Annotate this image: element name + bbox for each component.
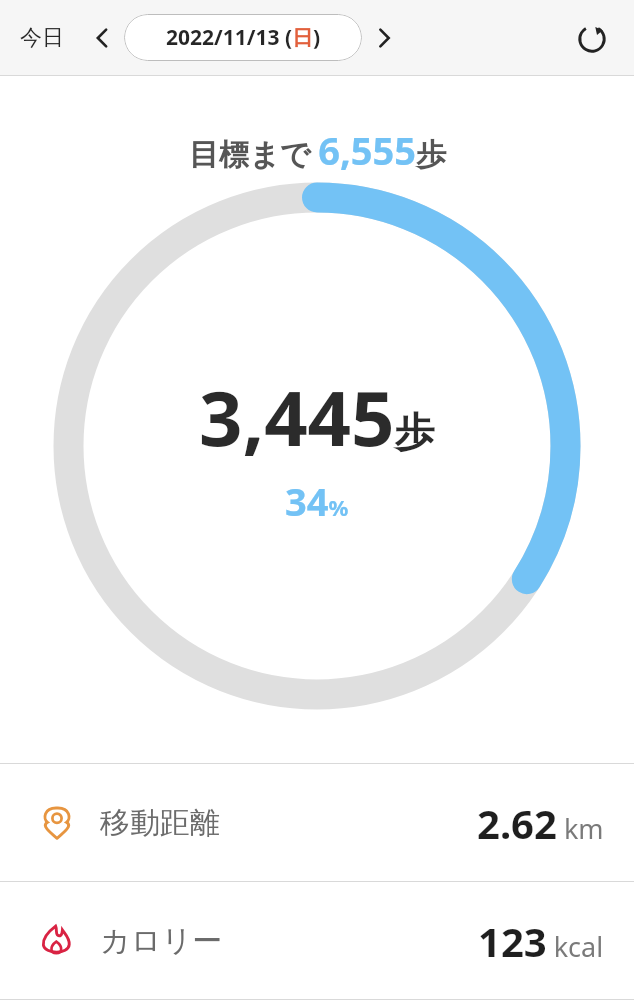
staticText: 2.62 km (477, 796, 604, 850)
staticText: 目標まで 6,555歩 (189, 124, 446, 176)
staticText: カロリー (100, 922, 223, 960)
staticText: 3,445歩 (199, 365, 435, 469)
button[interactable]: Calories (0, 882, 634, 999)
button[interactable]: Refresh (568, 14, 616, 62)
staticText: 2022/11/13 (日) (166, 23, 321, 52)
staticText: 123 kcal (478, 914, 604, 968)
button[interactable]: Next day (362, 16, 406, 60)
button[interactable]: 今日 (14, 16, 70, 60)
other: Distance (40, 806, 74, 840)
staticText: 移動距離 (100, 804, 220, 842)
button[interactable]: 2022/11/13 (日) (124, 14, 362, 61)
button[interactable]: Distance (0, 764, 634, 881)
staticText: 34% (285, 475, 349, 527)
staticText: 今日 (20, 24, 64, 52)
button[interactable]: Previous day (80, 16, 124, 60)
other: Calories (40, 924, 74, 958)
